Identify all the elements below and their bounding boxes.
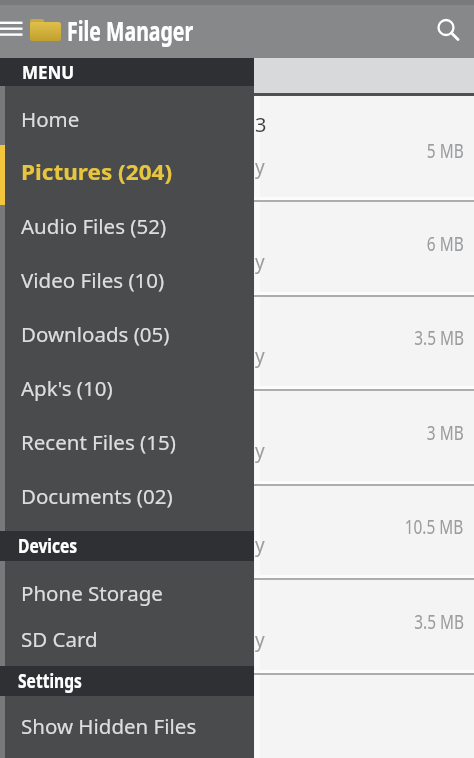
staticText: MENU (22, 61, 75, 84)
button[interactable]: Recent Files (15) (0, 415, 254, 468)
staticText: 3 MB (427, 419, 464, 441)
staticText: Show Hidden Files (21, 712, 197, 740)
staticText: Phone Storage (21, 579, 163, 607)
staticText: Downloads (05) (21, 320, 170, 348)
staticText: y (255, 438, 265, 464)
staticText: 10.5 MB (405, 513, 464, 535)
button[interactable]: 3.5 MB (254, 294, 474, 389)
staticText: y (255, 154, 265, 180)
staticText: 3.5 MB (414, 608, 464, 630)
button[interactable] (0, 0, 58, 58)
button[interactable]: Pictures (204) (0, 145, 254, 198)
staticText: 3 (255, 111, 267, 138)
staticText: SD Card (21, 625, 98, 653)
staticText: y (255, 249, 265, 275)
staticText: 3.5 MB (414, 324, 464, 346)
staticText: Audio Files (52) (21, 212, 167, 240)
button[interactable]: 3 (254, 96, 474, 200)
button[interactable]: 10.5 MB (254, 483, 474, 578)
button[interactable]: Video Files (10) (0, 253, 254, 306)
staticText: Apk's (10) (21, 374, 113, 402)
button[interactable]: Documents (02) (0, 469, 254, 522)
staticText: y (255, 532, 265, 558)
button[interactable]: Downloads (05) (0, 307, 254, 360)
button[interactable]: Home (0, 92, 254, 145)
staticText: Pictures (204) (21, 158, 173, 186)
button[interactable]: 3 MB (254, 389, 474, 484)
staticText: Devices (18, 533, 78, 559)
staticText: 6 MB (427, 230, 464, 252)
staticText: y (255, 627, 265, 653)
button[interactable]: Show Hidden Files (0, 703, 254, 749)
staticText: File Manager (67, 13, 194, 48)
staticText: Recent Files (15) (21, 428, 176, 456)
staticText: 5 MB (427, 137, 464, 159)
staticText: Settings (18, 668, 82, 694)
button[interactable]: Apk's (10) (0, 361, 254, 414)
button[interactable]: 6 MB (254, 200, 474, 295)
button[interactable] (424, 5, 469, 50)
staticText: Documents (02) (21, 482, 173, 510)
button[interactable]: Phone Storage (0, 570, 254, 616)
button[interactable]: Audio Files (52) (0, 199, 254, 252)
button[interactable]: SD Card (0, 616, 254, 662)
staticText: y (255, 343, 265, 369)
button[interactable]: 3.5 MB (254, 578, 474, 673)
staticText: Home (21, 105, 80, 133)
staticText: Video Files (10) (21, 266, 165, 294)
